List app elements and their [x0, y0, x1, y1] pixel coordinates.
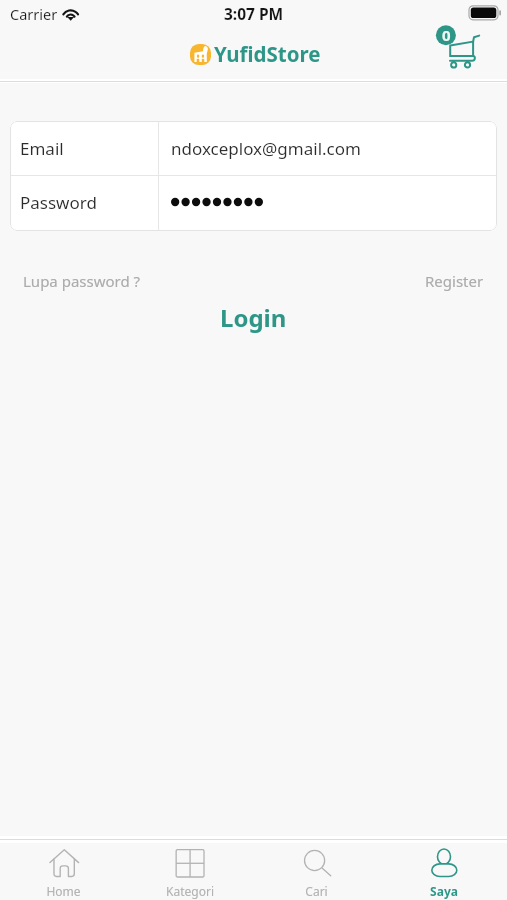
- staticText: Email: [20, 137, 64, 160]
- staticText: Cari: [305, 883, 328, 899]
- staticText: Register: [425, 271, 484, 291]
- button[interactable]: Login: [196, 298, 311, 337]
- staticText: Kategori: [166, 883, 214, 899]
- button[interactable]: Saya: [380, 843, 507, 900]
- button[interactable]: Lupa password ?: [23, 267, 141, 295]
- staticText: Home: [46, 883, 81, 899]
- staticText: Lupa password ?: [23, 271, 141, 291]
- staticText: Login: [220, 301, 287, 334]
- button[interactable]: Home: [0, 843, 126, 900]
- button[interactable]: Email: [10, 121, 497, 175]
- button[interactable]: Cari: [253, 843, 380, 900]
- staticText: Carrier: [10, 4, 58, 24]
- staticText: Saya: [430, 883, 458, 899]
- button[interactable]: Shopping cart: [429, 20, 489, 73]
- button[interactable]: Register: [425, 267, 484, 295]
- staticText: 3:07 PM: [224, 3, 284, 24]
- staticText: YufidStore: [214, 40, 321, 68]
- staticText: Password: [20, 191, 97, 214]
- staticText: ndoxceplox@gmail.com: [171, 137, 361, 160]
- staticText: 0: [442, 25, 451, 45]
- button[interactable]: Password: [10, 176, 497, 231]
- button[interactable]: Kategori: [126, 843, 253, 900]
